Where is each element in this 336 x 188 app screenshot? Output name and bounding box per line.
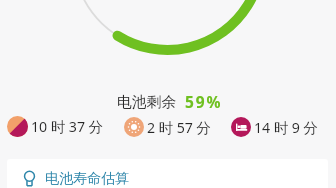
staticText: 10 时 37 分 bbox=[31, 117, 103, 136]
staticText: 电池剩余 bbox=[117, 93, 177, 112]
other: Screen brightness bbox=[124, 117, 144, 137]
staticText: 电池寿命估算 bbox=[45, 170, 129, 188]
staticText: 2 时 57 分 bbox=[147, 118, 211, 137]
staticText: 59% bbox=[185, 91, 223, 112]
button[interactable]: 电池寿命估算 bbox=[7, 159, 328, 188]
other: Screen on time bbox=[7, 116, 28, 137]
staticText: 14 时 9 分 bbox=[254, 118, 318, 137]
other: Standby time bbox=[231, 117, 251, 137]
